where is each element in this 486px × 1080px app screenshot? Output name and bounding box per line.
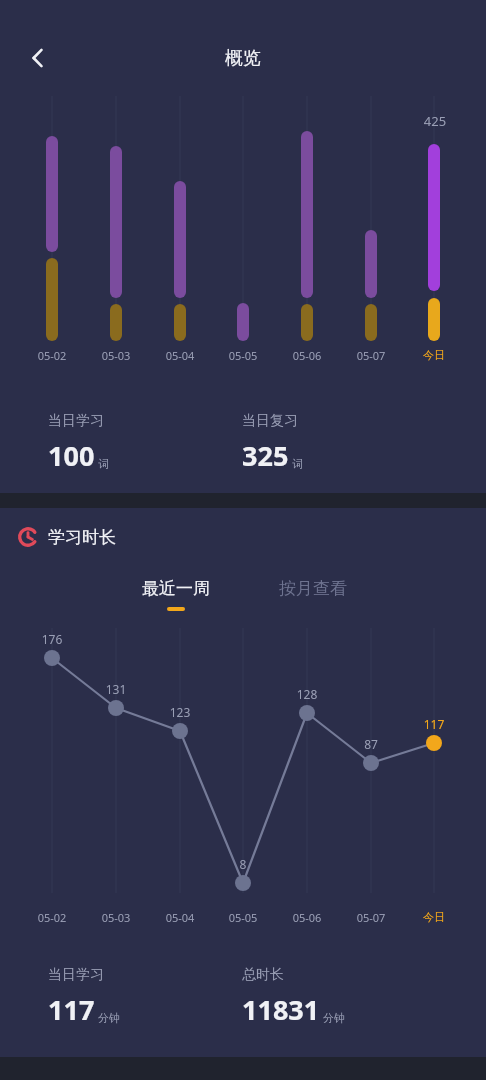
staticText: 117 [48,991,95,1028]
staticText: 425 [415,112,455,130]
staticText: 11831 [242,991,320,1028]
staticText: 概览 [225,47,261,70]
staticText: 05-05 [213,348,273,363]
staticText: 最近一周 [142,578,210,599]
staticText: 分钟 [98,1011,120,1025]
staticText: 分钟 [323,1011,345,1025]
staticText: 05-04 [150,910,210,925]
staticText: 131 [86,681,146,697]
staticText: 05-06 [277,348,337,363]
button[interactable]: 按月查看 [248,566,378,628]
button[interactable]: 最近一周 [114,566,238,628]
button[interactable]: Back [10,30,66,86]
staticText: 05-07 [341,348,401,363]
staticText: 05-05 [213,910,273,925]
staticText: 学习时长 [48,527,116,548]
staticText: 按月查看 [279,578,347,599]
staticText: 今日 [404,348,464,362]
staticText: 100 [48,437,95,474]
staticText: 05-06 [277,910,337,925]
staticText: 05-07 [341,910,401,925]
staticText: 总时长 [242,966,284,984]
staticText: 117 [404,716,464,732]
staticText: 05-02 [22,910,82,925]
staticText: 05-03 [86,910,146,925]
staticText: 当日学习 [48,412,104,430]
staticText: 当日学习 [48,966,104,984]
staticText: 05-02 [22,348,82,363]
staticText: 词 [98,457,109,471]
staticText: 8 [213,856,273,872]
staticText: 当日复习 [242,412,298,430]
staticText: 325 [242,437,289,474]
staticText: 今日 [404,910,464,924]
staticText: 05-03 [86,348,146,363]
staticText: 176 [22,631,82,647]
staticText: 05-04 [150,348,210,363]
staticText: 词 [292,457,303,471]
staticText: 128 [277,686,337,702]
staticText: 123 [150,704,210,720]
staticText: 87 [341,736,401,752]
